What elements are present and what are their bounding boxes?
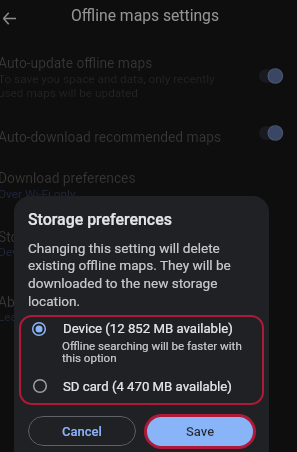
button[interactable]: Back (0, 9, 19, 28)
staticText: Cancel (62, 424, 102, 439)
staticText: Storage (0, 229, 46, 245)
staticText: Download preferences (0, 170, 136, 186)
staticText: Auto-update offline maps (0, 55, 153, 71)
button[interactable]: Cancel (28, 416, 136, 446)
button[interactable] (22, 317, 259, 365)
staticText: Auto-download recommended maps (0, 129, 222, 145)
staticText: Over Wi-Fi only (0, 187, 76, 201)
staticText: Offline searching will be faster with th… (62, 339, 248, 365)
staticText: Learn more (0, 310, 58, 324)
button[interactable]: Toggle (259, 68, 283, 84)
staticText: Save (186, 424, 215, 439)
button[interactable] (22, 372, 259, 398)
staticText: SD card (4 470 MB available) (63, 379, 232, 394)
staticText: About (0, 294, 35, 310)
button[interactable]: Save (147, 417, 253, 446)
staticText: Device (0, 245, 33, 259)
button[interactable]: Toggle (259, 125, 283, 141)
staticText: Changing this setting will delete existi… (28, 240, 234, 309)
staticText: Device (12 852 MB available) (63, 321, 233, 336)
staticText: Storage preferences (28, 210, 172, 229)
staticText: Offline maps settings (71, 6, 220, 24)
staticText: To save you space and data, only recentl… (0, 72, 220, 100)
